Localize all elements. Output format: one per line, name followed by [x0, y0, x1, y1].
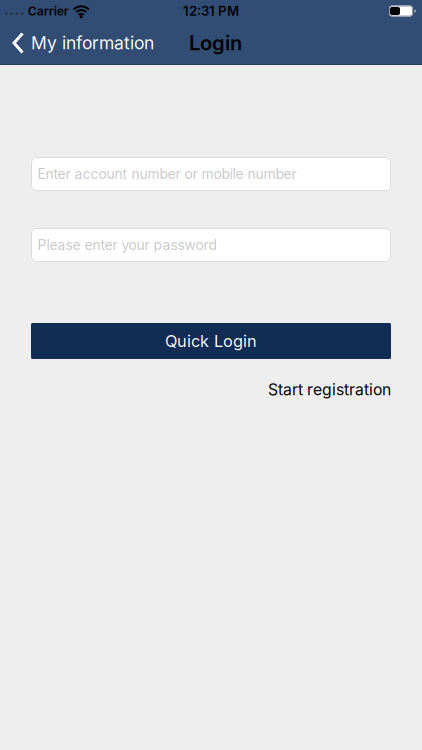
staticText: Quick Login [165, 331, 257, 351]
staticText: Please enter your password [37, 237, 216, 253]
button[interactable]: Back [0, 32, 154, 54]
button[interactable]: Enter account number or mobile number [31, 157, 391, 191]
button[interactable]: Start registration [268, 380, 391, 399]
staticText: Enter account number or mobile number [37, 166, 296, 182]
staticText: Login [189, 31, 242, 55]
staticText: My information [31, 32, 154, 54]
staticText: Start registration [268, 380, 391, 399]
button[interactable]: Quick Login [31, 323, 391, 359]
staticText: 12:31 PM [183, 3, 239, 19]
button[interactable]: Please enter your password [31, 228, 391, 262]
staticText: Carrier [28, 4, 69, 18]
